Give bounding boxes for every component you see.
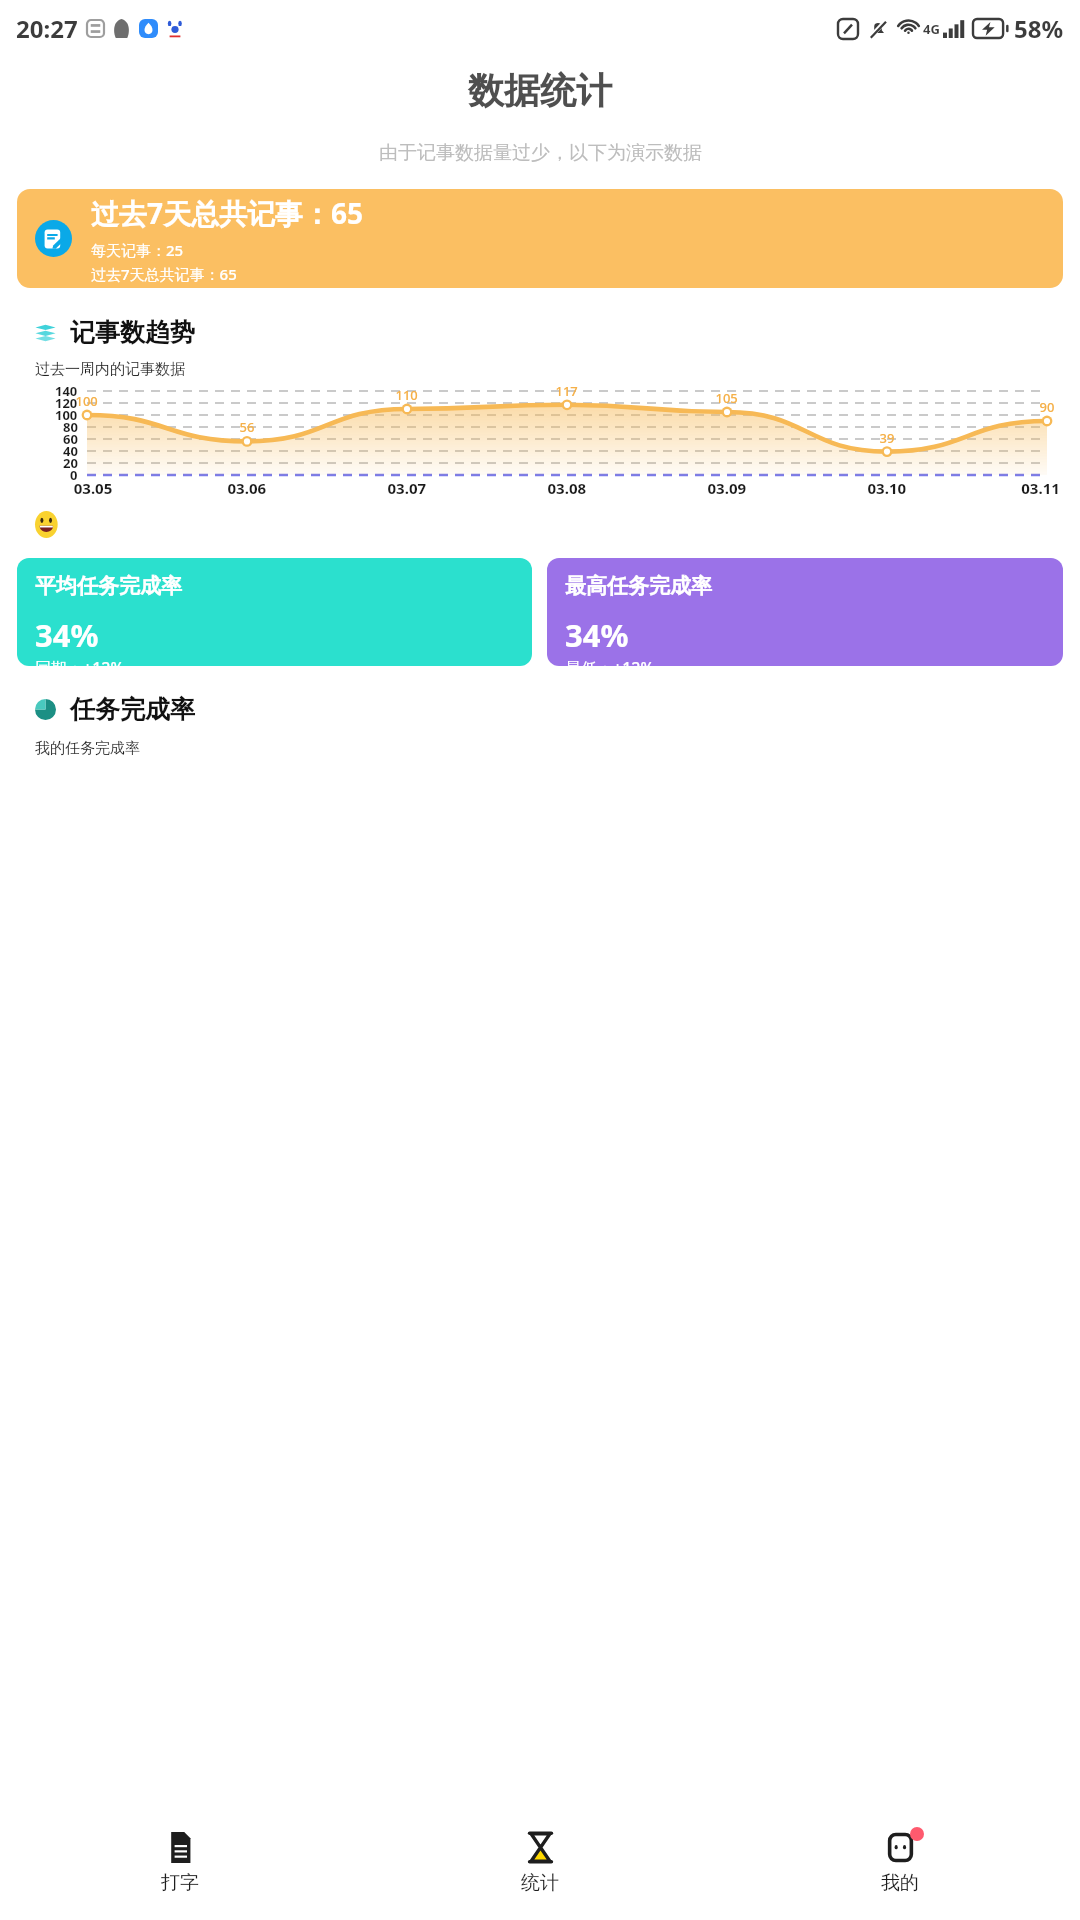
button[interactable]: 记事数趋势	[17, 305, 1063, 544]
staticText: 同期：+12%	[35, 657, 125, 666]
staticText: 4G	[923, 20, 940, 38]
staticText: 记事数趋势	[70, 317, 195, 348]
staticText: 数据统计	[468, 68, 612, 113]
staticText: 我的	[881, 1871, 919, 1895]
staticText: 最低：+12%	[565, 657, 655, 666]
staticText: 34%	[35, 614, 99, 656]
staticText: 打字	[161, 1871, 199, 1895]
staticText: 过去一周内的记事数据	[35, 360, 185, 379]
staticText: 过去7天总共记事：65	[91, 264, 237, 284]
staticText: 34%	[565, 614, 629, 656]
staticText: 任务完成率	[70, 694, 195, 725]
button[interactable]: 我的	[720, 1806, 1080, 1920]
button[interactable]: 统计	[360, 1806, 720, 1920]
staticText: 由于记事数据量过少，以下为演示数据	[379, 141, 702, 165]
button[interactable]: 平均任务完成率	[17, 558, 532, 666]
staticText: 20:27	[16, 12, 78, 45]
staticText: 58%	[1014, 12, 1064, 45]
staticText: 我的任务完成率	[35, 739, 140, 758]
staticText: 每天记事：25	[91, 240, 184, 260]
button[interactable]: 过去7天总共记事：65	[17, 189, 1063, 288]
staticText: 最高任务完成率	[565, 573, 712, 599]
button[interactable]: 打字	[0, 1806, 360, 1920]
staticText: 过去7天总共记事：65	[91, 194, 364, 232]
staticText: 统计	[521, 1871, 559, 1895]
button[interactable]: 最高任务完成率	[547, 558, 1063, 666]
button[interactable]: 任务完成率	[17, 680, 1063, 820]
staticText: 平均任务完成率	[35, 573, 182, 599]
